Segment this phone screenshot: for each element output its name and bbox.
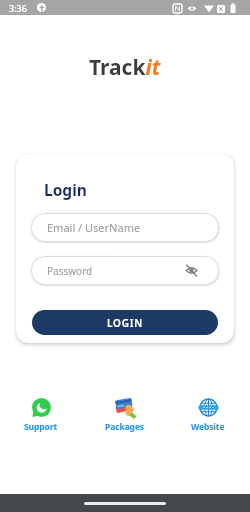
staticText: Website: [191, 421, 225, 433]
button[interactable]: Support: [11, 398, 71, 433]
button[interactable]: Packages: [95, 398, 155, 433]
button[interactable]: Email / UserName: [31, 213, 219, 242]
staticText: Login: [44, 179, 87, 200]
staticText: Password: [47, 264, 93, 278]
button[interactable]: Password: [31, 256, 219, 285]
button[interactable]: Website: [178, 398, 238, 433]
staticText: Packages: [105, 421, 145, 433]
staticText: Trackit: [89, 53, 161, 82]
staticText: Support: [24, 421, 58, 433]
staticText: 3:36: [9, 2, 27, 14]
staticText: LOGIN: [107, 316, 144, 330]
button[interactable]: LOGIN: [32, 310, 218, 335]
staticText: Email / UserName: [47, 220, 141, 235]
